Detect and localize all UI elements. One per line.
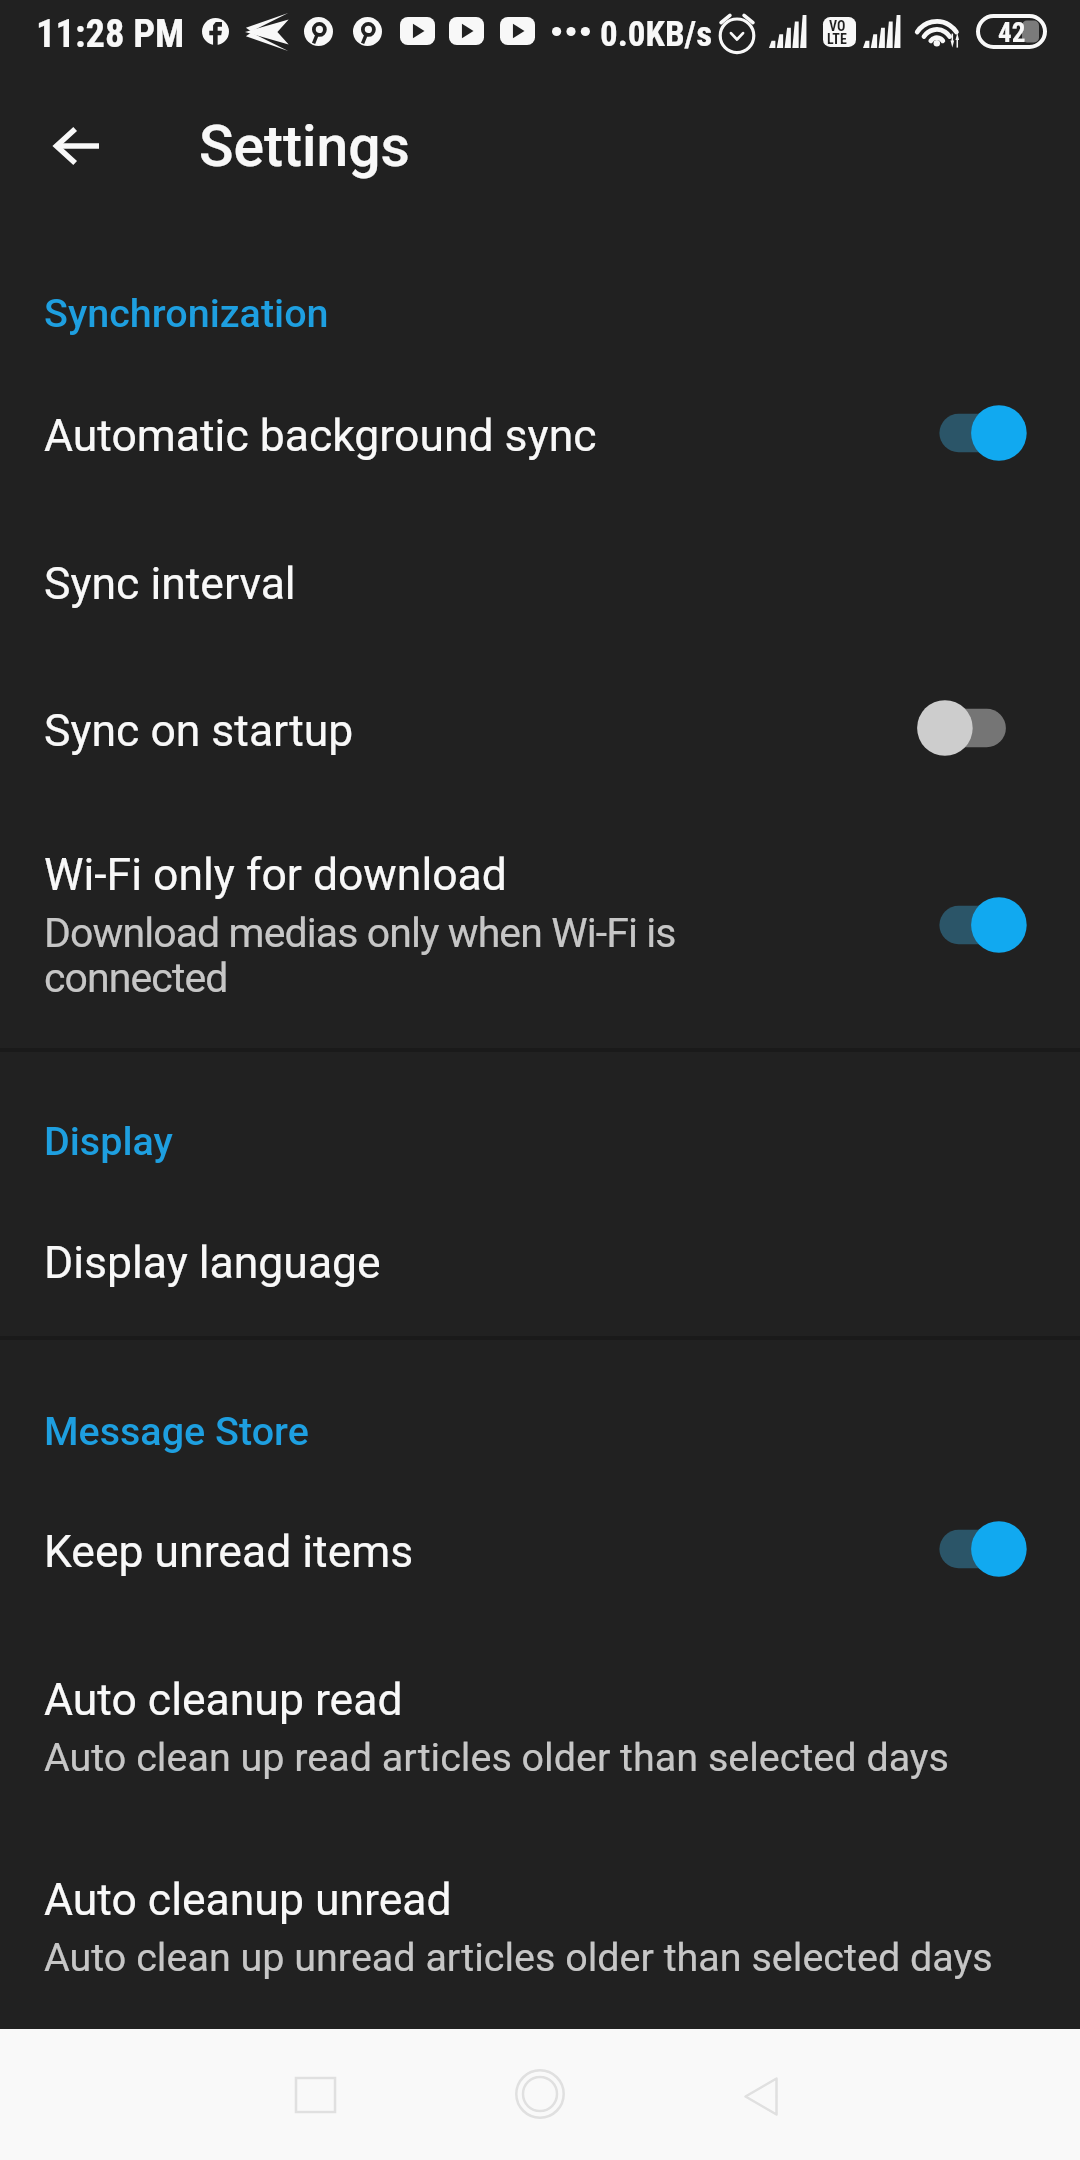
staticText: Auto cleanup unread [44,1874,452,1926]
staticText: Auto clean up read articles older than s… [44,1734,1080,1780]
staticText: Message Store [44,1408,309,1454]
button[interactable]: Display language [0,1189,1080,1336]
staticText: Automatic background sync [44,410,597,462]
button[interactable]: Home [480,2034,600,2154]
staticText: Display language [44,1237,381,1289]
button[interactable]: Wi-Fi only for download [917,887,1027,963]
staticText: Auto clean up unread articles older than… [44,1934,1080,1980]
button[interactable]: Auto cleanup read [0,1624,1080,1824]
button[interactable]: Recent apps [255,2035,375,2155]
staticText: Download medias only when Wi-Fi is conne… [44,909,744,1002]
staticText: Auto cleanup read [44,1674,403,1726]
staticText: Sync interval [44,558,296,610]
button[interactable]: Auto cleanup unread [0,1824,1080,2024]
button[interactable]: Back [38,107,116,185]
button[interactable]: Keep unread items [917,1511,1027,1587]
staticText: 0.0KB/s [600,14,713,55]
button[interactable]: Automatic background sync [917,395,1027,471]
staticText: Keep unread items [44,1526,414,1578]
staticText: Synchronization [44,290,329,336]
staticText: LTE [827,31,847,47]
button[interactable]: Sync on startup [0,654,1080,801]
staticText: VO [829,18,846,34]
button[interactable]: Keep unread items [0,1477,1080,1624]
staticText: 42 [998,17,1026,48]
button[interactable]: Back [701,2036,821,2156]
staticText: Wi-Fi only for download [44,849,507,901]
button[interactable]: Sync on startup [917,690,1027,766]
button[interactable]: Sync interval [0,507,1080,654]
button[interactable]: Wi-Fi only for download [0,801,1080,1048]
staticText: 11:28 PM [36,11,185,56]
staticText: Sync on startup [44,705,354,757]
staticText: Settings [199,113,410,180]
staticText: Display [44,1118,173,1164]
button[interactable]: Automatic background sync [0,360,1080,507]
